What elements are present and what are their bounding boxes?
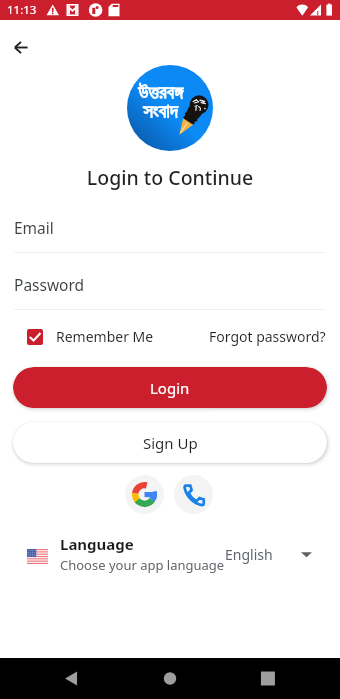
button[interactable]: Back xyxy=(5,31,37,63)
staticText: Forgot password? xyxy=(209,327,326,346)
staticText: Login to Continue xyxy=(0,164,340,191)
button[interactable]: Sign Up xyxy=(13,422,327,463)
staticText: Password xyxy=(14,274,85,295)
button[interactable]: Sign in with Google xyxy=(125,475,164,514)
button[interactable]: Language xyxy=(0,534,340,574)
staticText: Email xyxy=(14,217,54,238)
staticText: Login xyxy=(150,378,190,398)
staticText: উত্তরবঙ্গ xyxy=(138,84,183,103)
staticText: Choose your app language xyxy=(60,556,225,574)
staticText: Remember Me xyxy=(56,327,154,346)
staticText: 11:13 xyxy=(7,2,37,18)
button[interactable]: Remember Me xyxy=(14,327,154,346)
staticText: Sign Up xyxy=(143,433,198,453)
staticText: English xyxy=(225,545,273,564)
button[interactable]: Sign in with Phone xyxy=(174,475,213,514)
button[interactable]: Login xyxy=(13,367,327,408)
button[interactable]: Forgot password? xyxy=(209,327,326,346)
staticText: সংবাদ xyxy=(143,103,178,122)
staticText: Language xyxy=(60,534,134,554)
